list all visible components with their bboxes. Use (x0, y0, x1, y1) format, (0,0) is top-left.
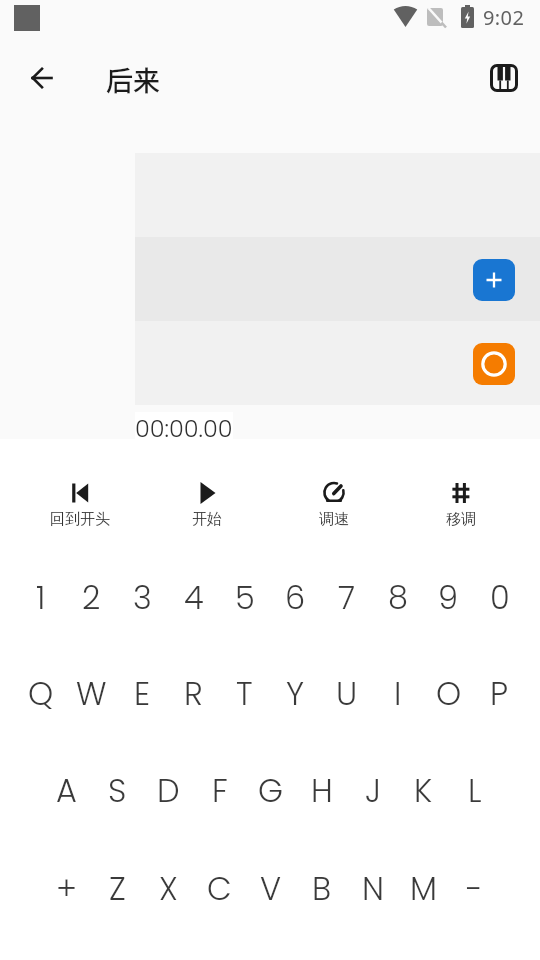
staticText: 8 (388, 575, 408, 620)
button[interactable]: 0 (474, 572, 525, 622)
button[interactable]: U (321, 668, 372, 718)
staticText: L (468, 768, 482, 813)
button[interactable] (487, 61, 521, 95)
button[interactable]: B (296, 863, 347, 913)
staticText: Z (109, 866, 126, 911)
button[interactable] (473, 259, 515, 301)
staticText: + (56, 866, 77, 911)
button[interactable]: 移调 (397, 482, 524, 538)
staticText: J (365, 768, 381, 813)
button[interactable]: C (194, 863, 245, 913)
button[interactable]: 3 (117, 572, 168, 622)
button[interactable]: 4 (168, 572, 219, 622)
button[interactable]: H (296, 765, 347, 815)
staticText: X (159, 866, 178, 911)
button[interactable]: 调速 (270, 482, 397, 538)
staticText: B (312, 866, 332, 911)
staticText: 后来 (106, 60, 160, 99)
staticText: T (236, 671, 253, 716)
staticText: W (76, 671, 107, 716)
button[interactable]: M (398, 863, 449, 913)
staticText: N (362, 866, 384, 911)
staticText: 开始 (192, 510, 222, 529)
staticText: 回到开头 (50, 510, 110, 529)
button[interactable]: 8 (372, 572, 423, 622)
button[interactable]: W (66, 668, 117, 718)
staticText: U (336, 671, 358, 716)
button[interactable]: J (347, 765, 398, 815)
staticText: 5 (235, 575, 255, 620)
staticText: 9:02 (483, 4, 525, 31)
button[interactable] (26, 62, 58, 94)
button[interactable]: L (449, 765, 500, 815)
staticText: O (436, 671, 462, 716)
staticText: 调速 (319, 510, 349, 529)
button[interactable]: E (117, 668, 168, 718)
button[interactable]: P (474, 668, 525, 718)
staticText: 0 (490, 575, 510, 620)
staticText: 4 (184, 575, 204, 620)
button[interactable]: K (398, 765, 449, 815)
staticText: 7 (338, 575, 356, 620)
button[interactable]: 9 (423, 572, 474, 622)
button[interactable] (473, 343, 515, 385)
staticText: R (184, 671, 203, 716)
staticText: 3 (133, 575, 152, 620)
button[interactable]: G (245, 765, 296, 815)
button[interactable]: R (168, 668, 219, 718)
staticText: 1 (36, 575, 46, 620)
staticText: 9 (438, 575, 459, 620)
staticText: K (414, 768, 433, 813)
button[interactable]: 回到开头 (16, 482, 143, 538)
staticText: A (56, 768, 77, 813)
button[interactable]: 5 (219, 572, 270, 622)
staticText: S (108, 768, 127, 813)
button[interactable]: S (92, 765, 143, 815)
staticText: C (207, 866, 232, 911)
staticText: P (490, 671, 509, 716)
button[interactable]: 6 (270, 572, 321, 622)
button[interactable]: X (143, 863, 194, 913)
button[interactable]: Y (270, 668, 321, 718)
button[interactable]: + (41, 863, 92, 913)
staticText: 00:00.00 (135, 412, 233, 446)
button[interactable]: N (347, 863, 398, 913)
staticText: 2 (82, 575, 101, 620)
staticText: - (466, 866, 483, 911)
staticText: 6 (285, 575, 306, 620)
staticText: 移调 (446, 510, 476, 529)
button[interactable]: F (194, 765, 245, 815)
staticText: F (212, 768, 228, 813)
button[interactable]: T (219, 668, 270, 718)
button[interactable]: V (245, 863, 296, 913)
button[interactable]: I (372, 668, 423, 718)
button[interactable]: D (143, 765, 194, 815)
button[interactable]: 2 (66, 572, 117, 622)
button[interactable]: Q (15, 668, 66, 718)
staticText: M (410, 866, 437, 911)
staticText: V (260, 866, 282, 911)
staticText: H (311, 768, 333, 813)
button[interactable]: 1 (15, 572, 66, 622)
button[interactable]: A (41, 765, 92, 815)
staticText: D (157, 768, 180, 813)
button[interactable]: Z (92, 863, 143, 913)
staticText: E (134, 671, 151, 716)
staticText: I (394, 671, 402, 716)
staticText: G (258, 768, 284, 813)
button[interactable]: - (449, 863, 500, 913)
button[interactable]: 7 (321, 572, 372, 622)
button[interactable]: 开始 (143, 482, 270, 538)
button[interactable]: O (423, 668, 474, 718)
staticText: Q (28, 671, 54, 716)
staticText: Y (286, 671, 305, 716)
